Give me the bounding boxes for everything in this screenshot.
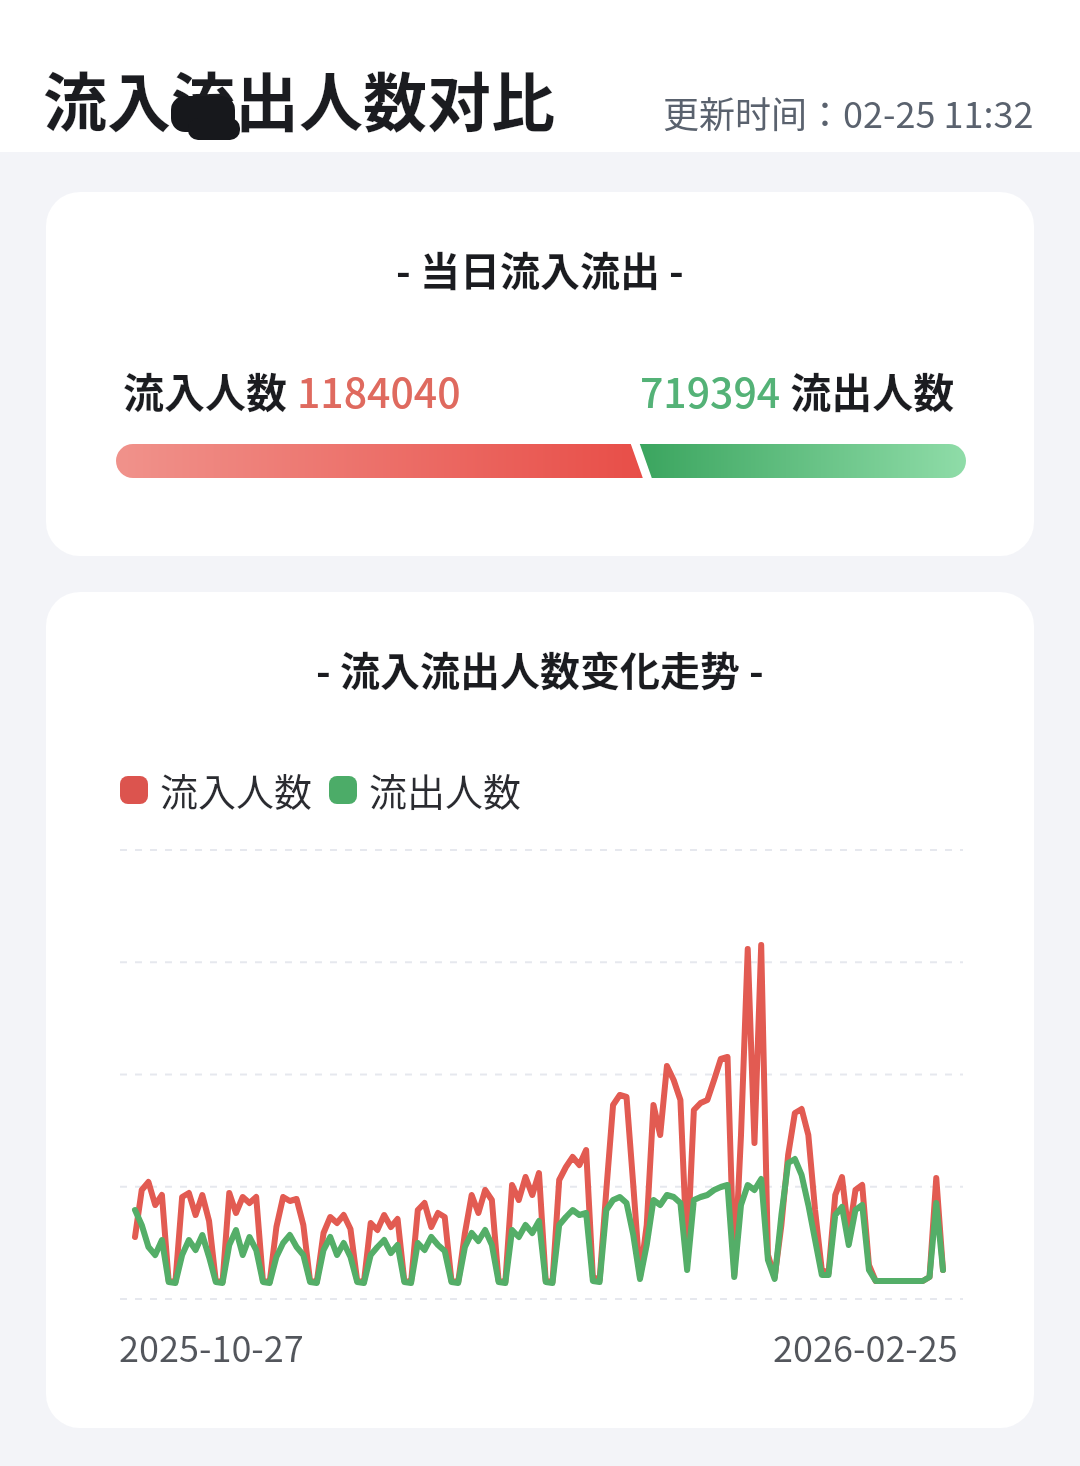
staticText: 2026-02-25 bbox=[773, 1320, 958, 1372]
staticText: 流出人数 bbox=[781, 360, 955, 419]
staticText: 流出人数 bbox=[369, 762, 522, 817]
button[interactable]: - 流入流出人数变化走势 - bbox=[46, 592, 1034, 1428]
staticText: - 当日流入流出 - bbox=[396, 240, 684, 298]
staticText: 流入人数 bbox=[123, 360, 297, 419]
staticText: - 流入流出人数变化走势 - bbox=[316, 640, 764, 698]
staticText: 流入人数 bbox=[160, 762, 313, 817]
staticText: 更新时间：02-25 11:32 bbox=[663, 86, 1034, 138]
staticText: 流入流出人数对比 bbox=[43, 52, 555, 145]
staticText: 2025-10-27 bbox=[119, 1320, 304, 1372]
button[interactable]: - 当日流入流出 - bbox=[46, 192, 1034, 556]
staticText: 719394 bbox=[640, 360, 781, 419]
staticText: 1184040 bbox=[297, 360, 461, 419]
